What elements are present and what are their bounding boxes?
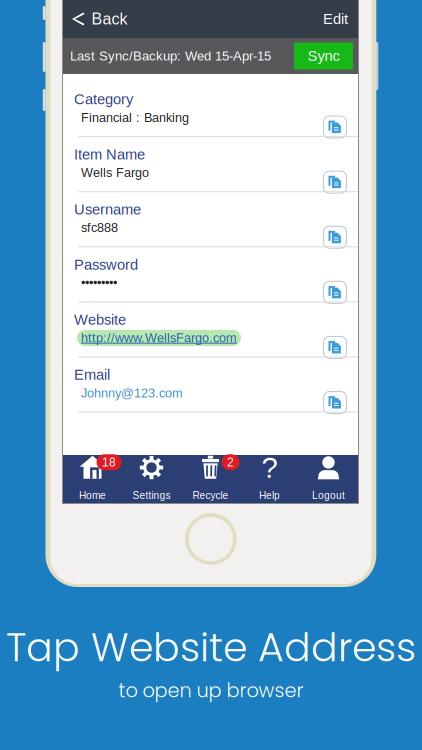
- staticText: 18: [102, 455, 116, 469]
- button[interactable]: Edit: [323, 5, 348, 33]
- staticText: •••••••••: [81, 276, 117, 290]
- staticText: ?: [261, 451, 277, 484]
- staticText: Logout: [312, 490, 345, 501]
- staticText: Password: [74, 256, 138, 273]
- button[interactable]: 2: [181, 454, 240, 504]
- staticText: Financial : Banking: [81, 110, 189, 125]
- staticText: Edit: [323, 11, 348, 27]
- staticText: Wells Fargo: [81, 165, 149, 180]
- staticText: Username: [74, 201, 141, 218]
- staticText: Home: [79, 490, 106, 501]
- staticText: to open up browser: [118, 677, 303, 704]
- staticText: Last Sync/Backup: Wed 15-Apr-15: [70, 49, 271, 63]
- button[interactable]: 18: [63, 454, 122, 504]
- button[interactable]: Settings: [122, 454, 181, 504]
- button[interactable]: Password: [63, 247, 358, 301]
- button[interactable]: Logout: [299, 454, 358, 504]
- staticText: Settings: [132, 490, 170, 501]
- button[interactable]: Back: [72, 4, 127, 34]
- staticText: Website: [74, 311, 126, 328]
- staticText: Recycle: [192, 490, 228, 501]
- staticText: http://www.WellsFargo.com: [81, 331, 237, 345]
- button[interactable]: Sync: [294, 42, 353, 69]
- button[interactable]: ?: [240, 454, 299, 504]
- button[interactable]: Category: [63, 82, 358, 136]
- staticText: Johnny@123.com: [81, 386, 183, 400]
- staticText: sfc888: [81, 221, 118, 235]
- staticText: Back: [91, 10, 127, 28]
- staticText: Tap Website Address: [6, 620, 416, 675]
- button[interactable]: Website: [63, 302, 358, 356]
- button[interactable]: Item Name: [63, 137, 358, 191]
- button[interactable]: Username: [63, 192, 358, 246]
- staticText: Category: [74, 91, 133, 107]
- staticText: Email: [74, 367, 110, 383]
- staticText: 2: [227, 455, 234, 469]
- staticText: Sync: [307, 48, 339, 64]
- staticText: Item Name: [74, 146, 145, 163]
- button[interactable]: Email: [63, 357, 358, 412]
- staticText: Help: [259, 490, 280, 501]
